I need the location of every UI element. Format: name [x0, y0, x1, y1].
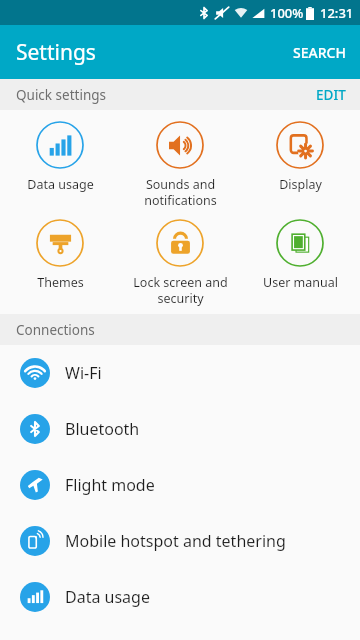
staticText: Wi-Fi	[65, 362, 102, 384]
staticText: Settings	[16, 38, 96, 67]
staticText: EDIT	[316, 86, 346, 104]
staticText: Bluetooth	[65, 418, 140, 440]
staticText: Lock screen and security	[133, 274, 228, 306]
staticText: 12:31	[320, 4, 354, 22]
staticText: Data usage	[65, 586, 150, 608]
button[interactable]: Data usage	[0, 110, 120, 193]
button[interactable]: Wi-Fi	[0, 345, 360, 401]
button[interactable]: Bluetooth	[0, 401, 360, 457]
staticText: Sounds and notifications	[144, 176, 217, 208]
staticText: Themes	[37, 274, 84, 291]
staticText: User manual	[263, 274, 338, 291]
button[interactable]: Lock screen	[120, 208, 240, 306]
staticText: Quick settings	[16, 86, 106, 104]
button[interactable]: Flight mode	[0, 457, 360, 513]
button[interactable]: Themes	[0, 208, 120, 291]
staticText: Connections	[16, 321, 95, 339]
button[interactable]: EDIT	[302, 79, 360, 110]
staticText: Display	[279, 176, 322, 193]
staticText: Flight mode	[65, 474, 155, 496]
button[interactable]: User manual	[240, 208, 360, 291]
staticText: Data usage	[27, 176, 94, 193]
staticText: Mobile hotspot and tethering	[65, 530, 286, 552]
staticText: SEARCH	[293, 43, 346, 62]
button[interactable]: Sounds	[120, 110, 240, 208]
button[interactable]: SEARCH	[279, 25, 360, 79]
staticText: 100%	[270, 4, 304, 22]
button[interactable]: Mobile hotspot and tethering	[0, 513, 360, 569]
button[interactable]: Data usage	[0, 569, 360, 625]
button[interactable]: Display	[240, 110, 360, 193]
